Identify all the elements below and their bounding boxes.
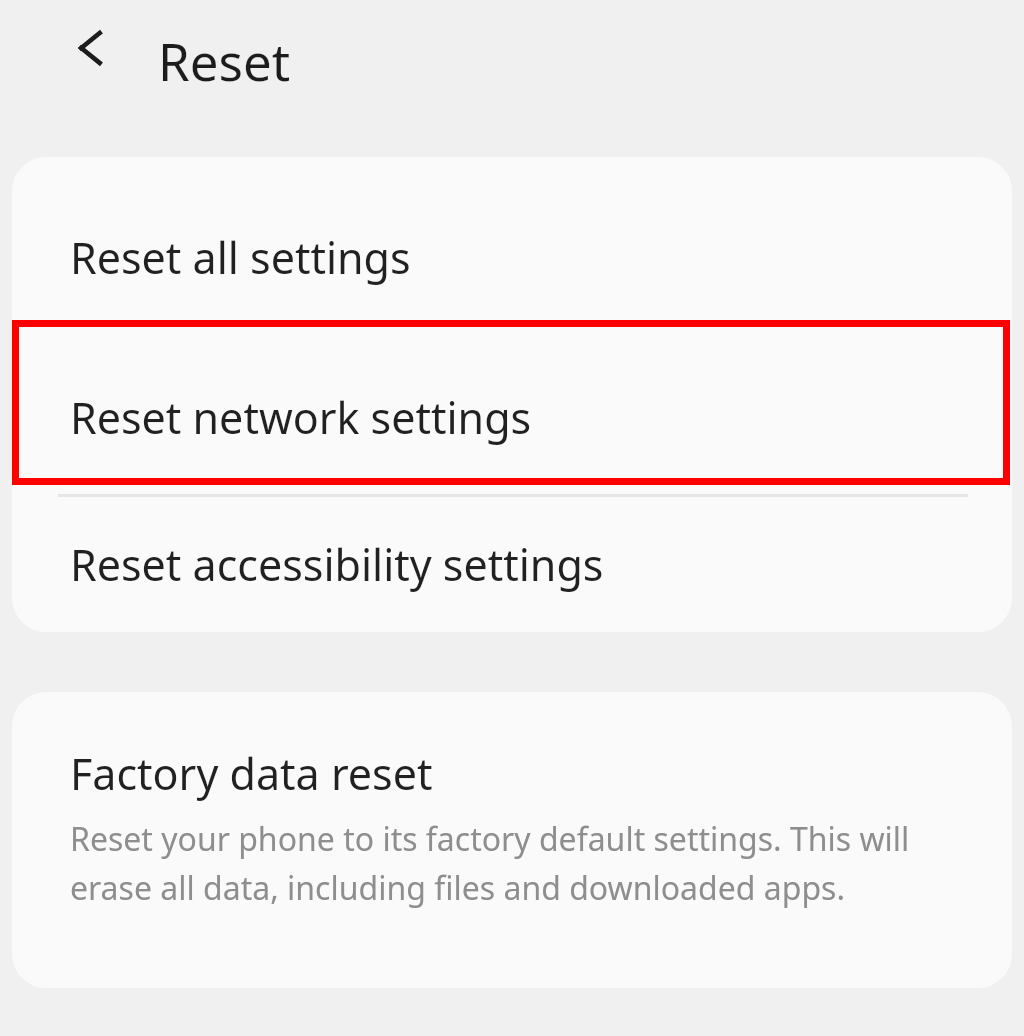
staticText: Reset your phone to its factory default …: [70, 817, 952, 909]
staticText: Reset: [158, 26, 291, 95]
button[interactable]: Reset accessibility settings: [12, 497, 1012, 632]
button[interactable]: Reset network settings: [12, 337, 1012, 497]
button[interactable]: Factory data reset: [12, 692, 1012, 988]
button[interactable]: Reset all settings: [12, 157, 1012, 337]
staticText: Reset all settings: [70, 228, 411, 287]
staticText: Reset network settings: [70, 388, 532, 447]
button[interactable]: Back: [52, 10, 128, 86]
staticText: Factory data reset: [70, 744, 433, 803]
staticText: Reset accessibility settings: [70, 535, 604, 594]
